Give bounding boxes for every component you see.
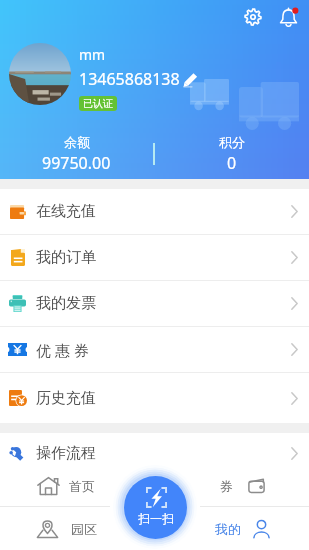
button[interactable]: Profile photo xyxy=(9,43,71,105)
staticText: 在线充值 xyxy=(36,202,96,221)
staticText: 首页 xyxy=(69,478,95,494)
staticText: 操作流程 xyxy=(36,444,96,463)
staticText: 优 惠 券 xyxy=(36,340,89,360)
staticText: 99750.00 xyxy=(42,152,111,174)
button[interactable]: 我的 xyxy=(177,507,309,550)
button[interactable]: Settings xyxy=(238,2,268,32)
button[interactable]: 在线充值 xyxy=(0,189,309,235)
button[interactable]: 首页 xyxy=(0,466,132,506)
staticText: 余额 xyxy=(64,134,90,150)
staticText: 券 xyxy=(220,478,233,494)
staticText: 园区 xyxy=(71,521,97,537)
staticText: 我的 xyxy=(215,521,241,537)
button[interactable]: 优 惠 券 xyxy=(0,327,309,373)
button[interactable]: 积分 xyxy=(155,134,309,174)
staticText: 历史充值 xyxy=(36,389,96,408)
staticText: 扫一扫 xyxy=(138,511,174,526)
staticText: 积分 xyxy=(219,134,245,150)
button[interactable]: 券 xyxy=(177,466,309,506)
button[interactable]: 余额 xyxy=(0,134,153,174)
staticText: 我的发票 xyxy=(36,294,96,313)
button[interactable]: 操作流程 xyxy=(0,433,309,473)
button[interactable]: 我的发票 xyxy=(0,281,309,327)
staticText: 0 xyxy=(227,152,237,174)
staticText: mm xyxy=(79,45,106,64)
button[interactable]: 扫一扫 xyxy=(124,476,187,539)
staticText: 已认证 xyxy=(83,97,113,110)
button[interactable]: 我的订单 xyxy=(0,235,309,281)
button[interactable]: 园区 xyxy=(0,507,132,550)
button[interactable]: 历史充值 xyxy=(0,373,309,423)
button[interactable]: 已认证 xyxy=(79,96,117,111)
staticText: 我的订单 xyxy=(36,248,96,267)
staticText: 13465868138 xyxy=(79,68,180,90)
button[interactable]: Edit profile xyxy=(182,71,198,87)
button[interactable]: Notifications xyxy=(273,2,303,32)
